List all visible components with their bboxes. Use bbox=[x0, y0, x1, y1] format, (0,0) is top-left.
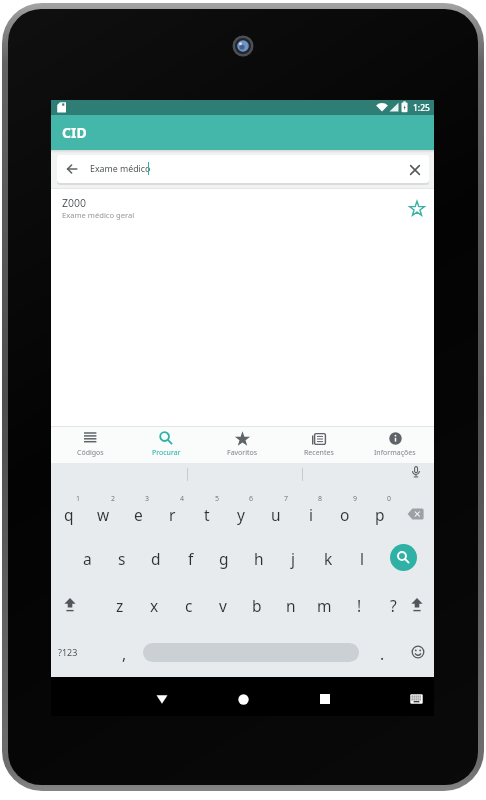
staticText: u bbox=[271, 504, 281, 525]
staticText: Favoritos bbox=[227, 448, 258, 458]
button[interactable] bbox=[238, 694, 249, 705]
staticText: m bbox=[317, 595, 332, 616]
button[interactable] bbox=[410, 598, 424, 612]
button[interactable] bbox=[410, 466, 422, 479]
button[interactable]: t bbox=[191, 500, 223, 528]
button[interactable] bbox=[408, 163, 422, 177]
staticText: a bbox=[83, 548, 92, 569]
button[interactable]: p bbox=[364, 500, 396, 528]
button[interactable]: n bbox=[275, 591, 307, 619]
staticText: Exame médico geral bbox=[62, 210, 135, 220]
staticText: p bbox=[375, 504, 385, 525]
staticText: 0 bbox=[387, 494, 392, 504]
staticText: 1:25 bbox=[413, 102, 430, 114]
staticText: . bbox=[380, 643, 385, 664]
button[interactable] bbox=[407, 508, 425, 520]
staticText: g bbox=[219, 548, 229, 569]
staticText: x bbox=[150, 595, 159, 616]
button[interactable] bbox=[156, 695, 168, 704]
button[interactable] bbox=[143, 643, 359, 662]
staticText: , bbox=[122, 643, 127, 664]
button[interactable]: m bbox=[308, 591, 340, 619]
staticText: v bbox=[219, 595, 227, 616]
button[interactable] bbox=[411, 645, 425, 659]
staticText: y bbox=[237, 504, 245, 525]
staticText: CID bbox=[62, 123, 87, 142]
button[interactable] bbox=[408, 200, 426, 218]
staticText: Exame médico bbox=[90, 163, 151, 175]
button[interactable]: l bbox=[346, 544, 378, 572]
button[interactable]: j bbox=[277, 544, 309, 572]
button[interactable]: g bbox=[208, 544, 240, 572]
staticText: z bbox=[116, 595, 124, 616]
button[interactable]: w bbox=[87, 500, 119, 528]
button[interactable] bbox=[204, 426, 280, 463]
button[interactable]: e bbox=[122, 500, 154, 528]
button[interactable]: q bbox=[53, 500, 85, 528]
staticText: s bbox=[118, 548, 126, 569]
button[interactable]: u bbox=[260, 500, 292, 528]
button[interactable]: x bbox=[138, 591, 170, 619]
button[interactable]: v bbox=[207, 591, 239, 619]
button[interactable]: . bbox=[366, 639, 398, 667]
button[interactable]: ! bbox=[343, 591, 375, 619]
staticText: ?123 bbox=[58, 646, 78, 658]
button[interactable]: o bbox=[329, 500, 361, 528]
button[interactable] bbox=[63, 598, 77, 612]
button[interactable] bbox=[52, 426, 128, 463]
button[interactable]: i bbox=[295, 500, 327, 528]
staticText: l bbox=[360, 548, 364, 569]
staticText: e bbox=[134, 504, 143, 525]
button[interactable]: k bbox=[312, 544, 344, 572]
button[interactable] bbox=[128, 426, 204, 463]
staticText: f bbox=[188, 548, 194, 569]
button[interactable] bbox=[390, 544, 417, 571]
button[interactable]: f bbox=[175, 544, 207, 572]
staticText: d bbox=[151, 548, 161, 569]
staticText: 7 bbox=[284, 494, 289, 504]
button[interactable]: y bbox=[225, 500, 257, 528]
staticText: h bbox=[254, 548, 264, 569]
staticText: q bbox=[64, 504, 74, 525]
staticText: Recentes bbox=[304, 448, 334, 458]
staticText: 1 bbox=[76, 494, 81, 504]
staticText: 2 bbox=[111, 494, 116, 504]
button[interactable]: , bbox=[108, 639, 140, 667]
button[interactable]: ? bbox=[377, 591, 409, 619]
button[interactable] bbox=[65, 162, 79, 176]
button[interactable]: b bbox=[241, 591, 273, 619]
button[interactable]: z bbox=[104, 591, 136, 619]
staticText: r bbox=[169, 504, 176, 525]
staticText: Informações bbox=[374, 448, 416, 458]
button[interactable]: h bbox=[243, 544, 275, 572]
staticText: ! bbox=[357, 595, 362, 616]
staticText: w bbox=[97, 504, 110, 525]
staticText: ? bbox=[390, 595, 397, 616]
button[interactable] bbox=[51, 189, 434, 226]
staticText: j bbox=[291, 548, 295, 569]
staticText: 3 bbox=[145, 494, 150, 504]
button[interactable] bbox=[357, 426, 433, 463]
button[interactable]: c bbox=[173, 591, 205, 619]
staticText: o bbox=[340, 504, 350, 525]
staticText: 4 bbox=[180, 494, 185, 504]
staticText: Z000 bbox=[62, 196, 87, 210]
staticText: b bbox=[252, 595, 262, 616]
button[interactable]: s bbox=[106, 544, 138, 572]
staticText: i bbox=[309, 504, 313, 525]
button[interactable]: a bbox=[71, 544, 103, 572]
staticText: 5 bbox=[215, 494, 220, 504]
button[interactable] bbox=[281, 426, 357, 463]
staticText: Procurar bbox=[152, 448, 181, 458]
staticText: Códigos bbox=[77, 448, 104, 458]
staticText: 9 bbox=[353, 494, 358, 504]
button[interactable]: r bbox=[156, 500, 188, 528]
button[interactable]: d bbox=[140, 544, 172, 572]
staticText: 6 bbox=[249, 494, 254, 504]
staticText: n bbox=[286, 595, 296, 616]
staticText: 8 bbox=[318, 494, 323, 504]
button[interactable] bbox=[57, 155, 429, 183]
button[interactable] bbox=[53, 638, 83, 666]
button[interactable] bbox=[410, 694, 423, 705]
